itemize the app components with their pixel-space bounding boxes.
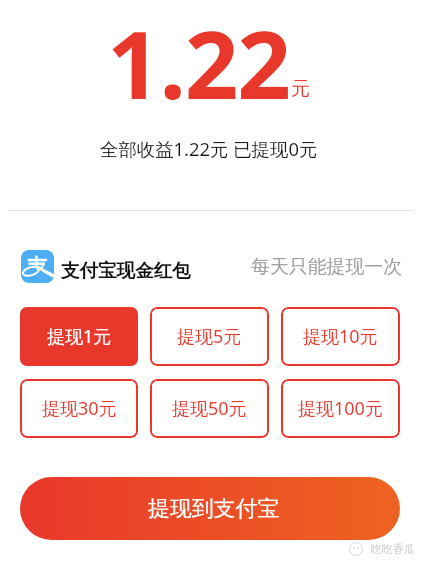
other: 支付宝	[21, 250, 54, 283]
button[interactable]: 提现50元	[150, 379, 269, 438]
button[interactable]: 提现100元	[281, 379, 400, 438]
staticText: 全部收益1.22元 已提现0元	[100, 136, 318, 161]
button[interactable]: 提现30元	[20, 379, 138, 438]
staticText: 提现30元	[42, 396, 117, 421]
staticText: 提现100元	[298, 396, 383, 421]
button[interactable]: 提现1元	[20, 307, 138, 366]
staticText: 每天只能提现一次	[251, 255, 403, 279]
staticText: 提现5元	[177, 324, 242, 349]
button[interactable]: 提现到支付宝	[20, 477, 400, 540]
staticText: 提现1元	[47, 324, 112, 349]
staticText: 吃吃香瓜	[371, 542, 415, 556]
staticText: 元	[291, 77, 310, 101]
staticText: 1.22	[107, 0, 290, 127]
staticText: 支付宝现金红包	[61, 259, 191, 282]
staticText: 提现到支付宝	[148, 495, 280, 523]
staticText: 提现50元	[172, 396, 247, 421]
button[interactable]: 提现5元	[150, 307, 269, 366]
staticText: 提现10元	[303, 324, 378, 349]
button[interactable]: 提现10元	[281, 307, 400, 366]
